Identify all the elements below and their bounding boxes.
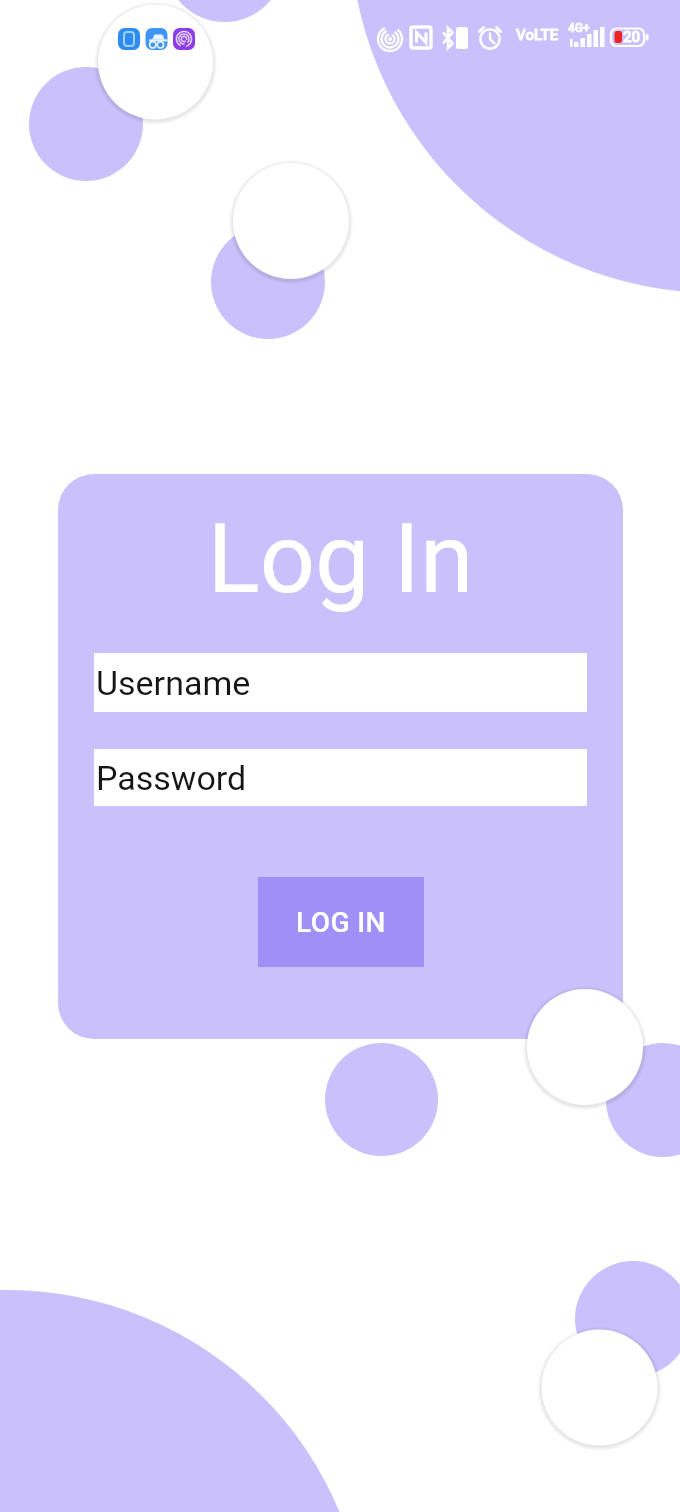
button[interactable]: Password — [94, 749, 587, 806]
staticText: 20 — [623, 28, 641, 46]
staticText: VoLTE — [516, 26, 559, 44]
staticText: Password — [96, 758, 247, 798]
staticText: Log In — [58, 502, 623, 616]
staticText: LOG IN — [296, 906, 386, 939]
button[interactable]: LOG IN — [258, 877, 424, 967]
button[interactable]: Status bar, open notification shade — [0, 0, 680, 70]
staticText: Username — [96, 663, 251, 703]
staticText: 4G+ — [568, 21, 590, 35]
button[interactable]: Username — [94, 653, 587, 712]
